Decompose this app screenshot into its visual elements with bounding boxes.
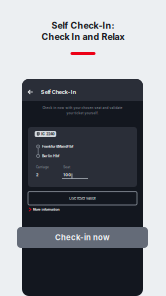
staticText: 2	[36, 172, 39, 177]
button[interactable]: Check-in now	[17, 227, 148, 248]
staticText: Check in now with your chosen seat and v…	[42, 106, 122, 110]
staticText: Check In and Relax	[41, 31, 124, 42]
button[interactable]: Use reservation	[28, 192, 137, 205]
staticText: Check-in now	[55, 233, 110, 242]
staticText: Carriage	[36, 165, 49, 169]
staticText: Use reservation	[69, 196, 96, 201]
staticText: Berlin Hbf	[42, 154, 59, 158]
staticText: Seat	[63, 165, 70, 169]
staticText: Self Check-In:	[51, 20, 114, 31]
staticText: More information	[33, 207, 60, 212]
button[interactable]: Back	[26, 87, 35, 97]
staticText: 100	[63, 172, 71, 177]
staticText: Frankfurt(Main)Hbf	[42, 144, 73, 149]
staticText: Self Check-In	[41, 89, 76, 95]
staticText: IC 2240	[41, 132, 54, 136]
button[interactable]: More information	[29, 206, 138, 212]
staticText: your ticket yourself.	[66, 111, 98, 115]
